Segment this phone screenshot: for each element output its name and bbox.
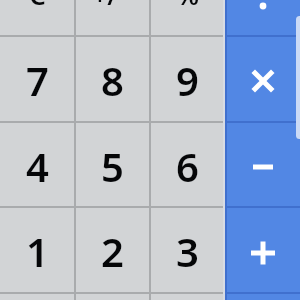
staticText: 6	[176, 139, 199, 193]
button[interactable]: +/−	[75, 0, 150, 37]
button[interactable]: 1	[0, 208, 75, 294]
button[interactable]: 5	[75, 123, 150, 209]
staticText: 7	[26, 53, 49, 107]
button[interactable]: .	[75, 294, 150, 300]
button[interactable]: 2	[75, 208, 150, 294]
button[interactable]: 7	[0, 37, 75, 123]
button[interactable]: 0	[0, 294, 75, 300]
button[interactable]: Multiply	[225, 38, 300, 124]
button[interactable]: Subtract	[225, 124, 300, 210]
button[interactable]: Divide	[225, 0, 300, 39]
button[interactable]: 8	[75, 37, 150, 123]
staticText: 5	[101, 139, 124, 193]
button[interactable]: 3	[150, 208, 225, 294]
staticText: 8	[101, 53, 124, 107]
staticText: 4	[26, 139, 49, 193]
staticText: 1	[26, 224, 49, 278]
button[interactable]: C	[0, 0, 75, 37]
staticText: C	[29, 0, 46, 12]
button[interactable]: Add	[225, 210, 300, 296]
staticText: 3	[176, 224, 199, 278]
button[interactable]: 6	[150, 123, 225, 209]
staticText: %	[176, 0, 199, 12]
button[interactable]: Equals	[225, 295, 300, 300]
button[interactable]: %	[150, 0, 225, 37]
button[interactable]: 9	[150, 37, 225, 123]
staticText: 9	[176, 53, 199, 107]
button[interactable]: 4	[0, 123, 75, 209]
staticText: 2	[101, 224, 124, 278]
staticText: +/−	[92, 0, 133, 12]
